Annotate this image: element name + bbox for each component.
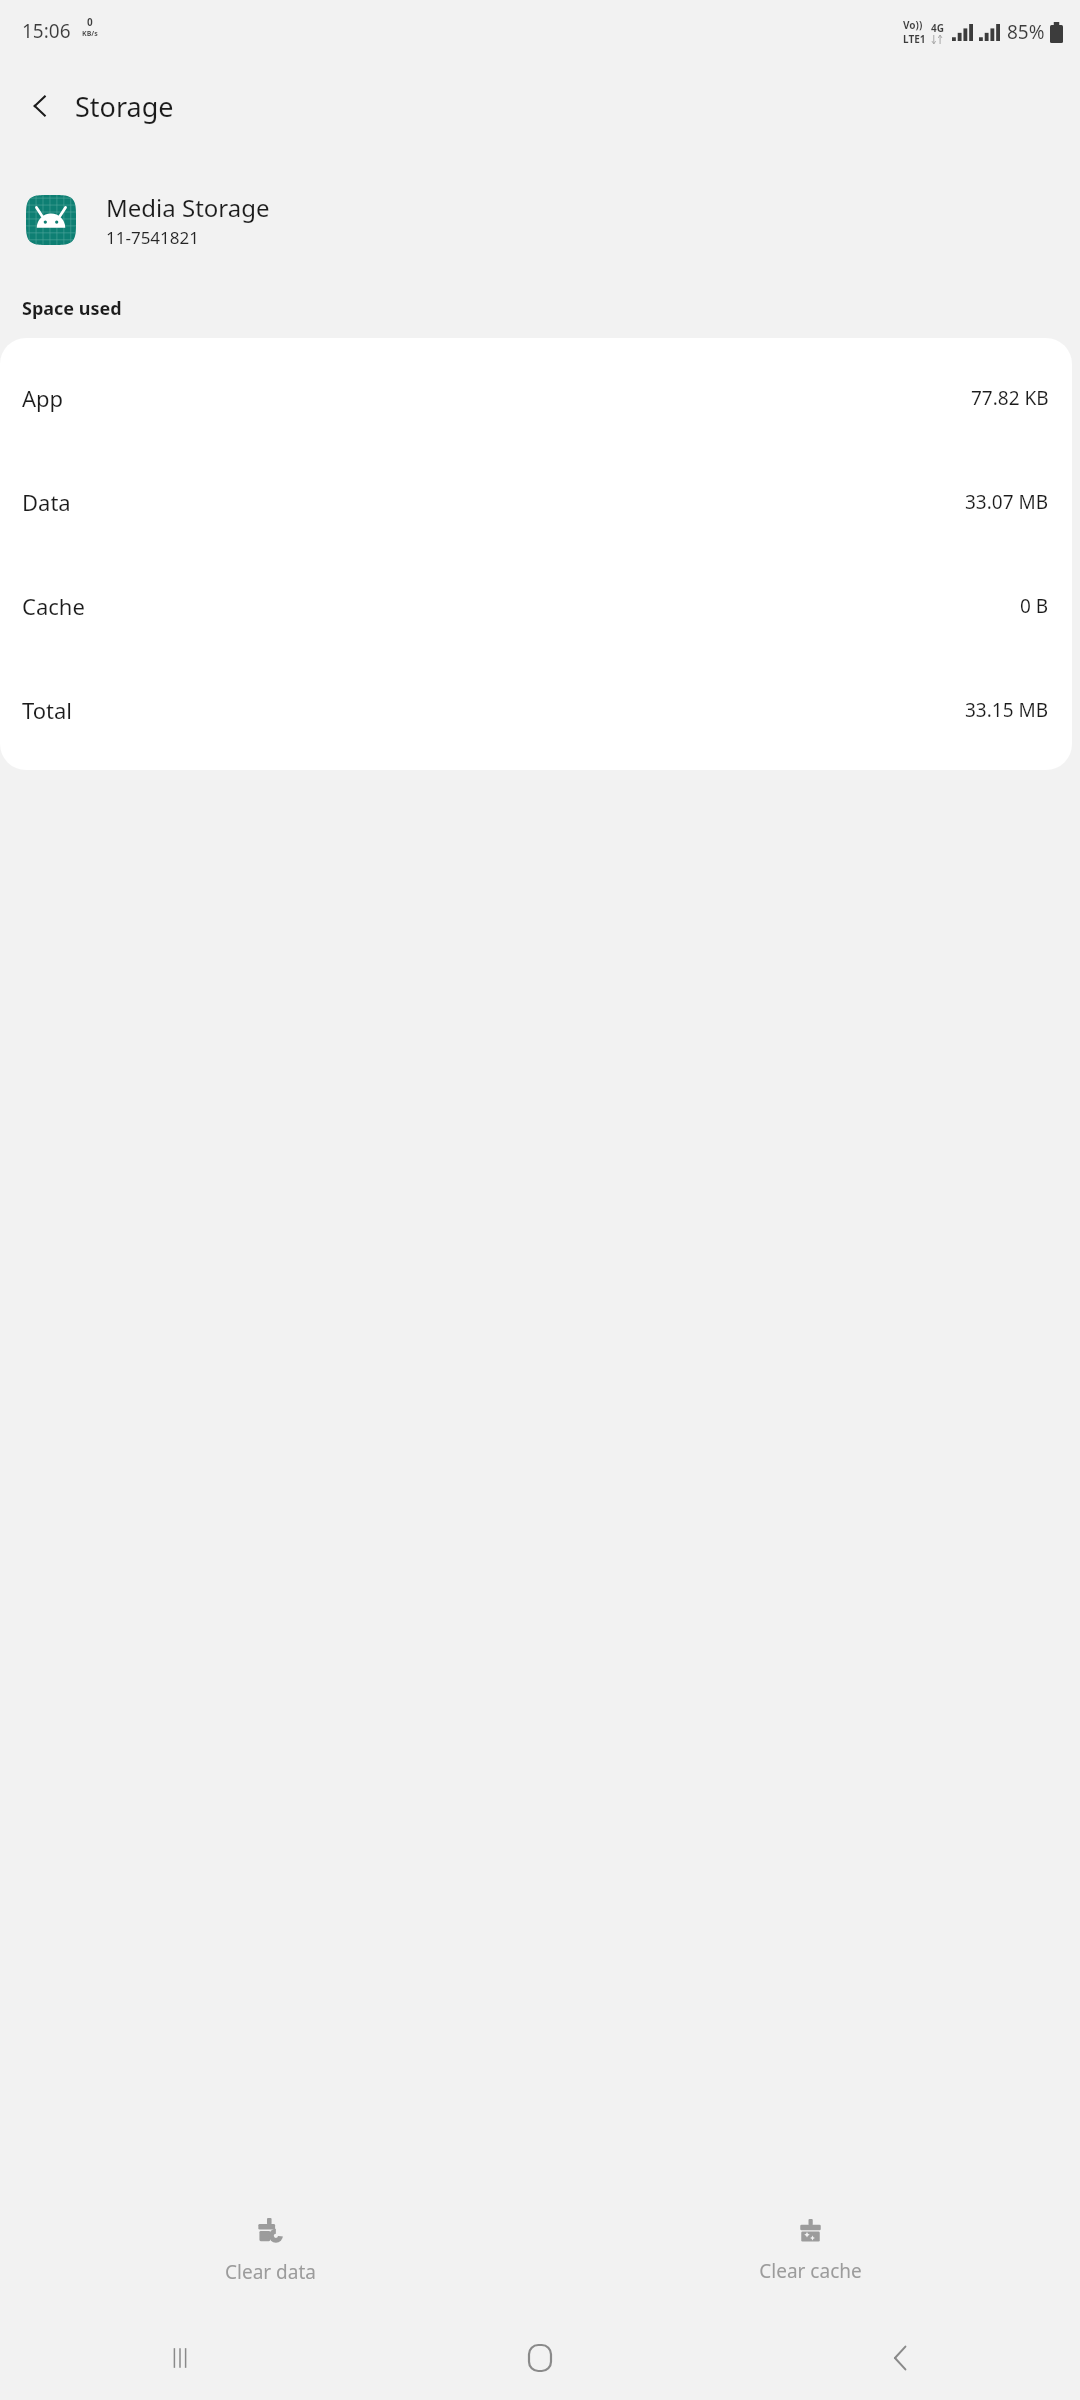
staticText: KB/s xyxy=(82,29,98,39)
button[interactable]: App xyxy=(0,346,1072,450)
staticText: 33.15 MB xyxy=(965,697,1049,723)
button[interactable]: Clear cache xyxy=(540,2186,1080,2316)
staticText: 33.07 MB xyxy=(965,489,1049,515)
staticText: 0 B xyxy=(1020,593,1049,619)
button[interactable]: Back xyxy=(720,2316,1080,2400)
staticText: 85% xyxy=(1007,19,1045,45)
button[interactable]: Home xyxy=(360,2316,720,2400)
staticText: 4G xyxy=(931,21,944,35)
staticText: 77.82 KB xyxy=(971,385,1049,411)
staticText: Total xyxy=(22,695,965,725)
staticText: Storage xyxy=(75,88,174,125)
staticText: Data xyxy=(22,487,965,517)
button[interactable]: Recent apps xyxy=(0,2316,360,2400)
staticText: App xyxy=(22,383,971,413)
staticText: Clear cache xyxy=(759,2258,862,2284)
staticText: 15:06 xyxy=(22,18,71,44)
button[interactable]: Clear data xyxy=(0,2186,540,2316)
staticText: Cache xyxy=(22,591,1020,621)
staticText: 11-7541821 xyxy=(106,226,199,249)
button[interactable]: Back xyxy=(12,78,68,134)
button[interactable]: Total xyxy=(0,658,1072,762)
staticText: LTE1 xyxy=(903,32,926,46)
button[interactable]: Data xyxy=(0,450,1072,554)
staticText: Vo)) xyxy=(903,18,923,32)
staticText: 0 xyxy=(87,15,93,29)
staticText: Space used xyxy=(22,296,122,321)
button[interactable]: Cache xyxy=(0,554,1072,658)
staticText: Media Storage xyxy=(106,191,270,224)
staticText: Clear data xyxy=(225,2259,316,2285)
